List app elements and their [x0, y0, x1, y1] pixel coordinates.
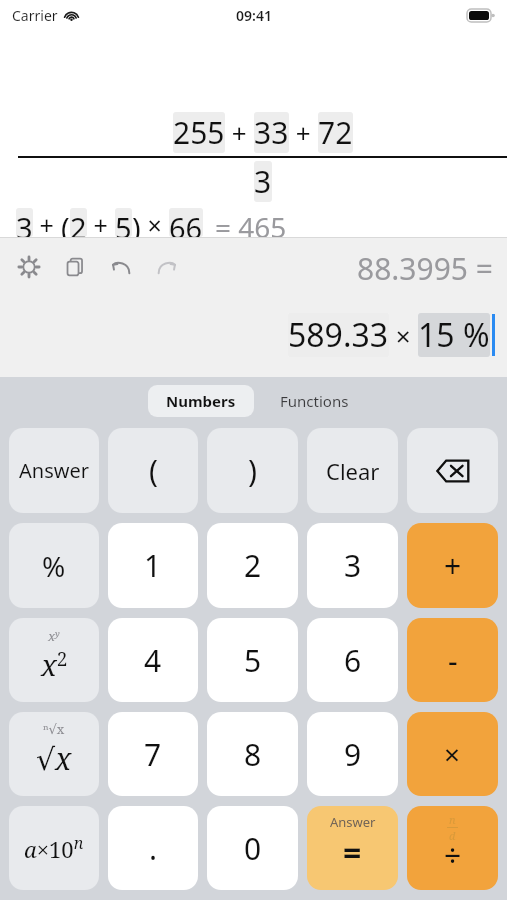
staticText: 3: [254, 161, 272, 202]
staticText: 255: [173, 112, 225, 153]
button[interactable]: Settings: [14, 252, 44, 282]
staticText: %: [42, 547, 66, 585]
staticText: +: [289, 115, 318, 150]
staticText: 88.3995 =: [357, 248, 493, 289]
staticText: 1: [144, 545, 162, 586]
button[interactable]: .: [108, 806, 198, 890]
staticText: ×: [444, 735, 461, 773]
staticText: ): [248, 450, 257, 491]
staticText: =: [343, 831, 362, 875]
button[interactable]: ×: [407, 712, 498, 796]
button[interactable]: Numbers: [148, 385, 254, 417]
staticText: Answer: [19, 457, 89, 484]
button[interactable]: 8: [207, 712, 298, 796]
staticText: ⁿ√x: [43, 720, 65, 738]
staticText: a×10n: [24, 832, 84, 864]
button[interactable]: Clear: [307, 428, 398, 513]
staticText: ÷: [444, 835, 462, 876]
staticText: 5: [244, 640, 262, 681]
button[interactable]: 2: [207, 523, 298, 608]
staticText: 72: [318, 112, 353, 153]
staticText: (: [61, 208, 70, 237]
button[interactable]: 9: [307, 712, 398, 796]
button[interactable]: 6: [307, 618, 398, 702]
button[interactable]: Backspace: [407, 428, 498, 513]
button[interactable]: 3: [307, 523, 398, 608]
staticText: +: [33, 208, 61, 237]
staticText: 2: [70, 208, 87, 237]
button[interactable]: -: [407, 618, 498, 702]
staticText: x2: [41, 645, 68, 684]
button[interactable]: Answer: [9, 428, 99, 513]
button[interactable]: 4: [108, 618, 198, 702]
button[interactable]: 0: [207, 806, 298, 890]
staticText: +: [444, 545, 462, 586]
staticText: 9: [344, 734, 362, 775]
staticText: 8: [244, 734, 262, 775]
staticText: 66: [169, 208, 203, 237]
button[interactable]: Undo: [106, 252, 136, 282]
button[interactable]: Functions: [270, 385, 359, 417]
staticText: xy: [48, 627, 60, 645]
staticText: √x: [36, 738, 72, 779]
staticText: Clear: [326, 456, 380, 486]
staticText: 4: [144, 640, 162, 681]
button[interactable]: square root: [9, 712, 99, 796]
staticText: +: [225, 115, 254, 150]
staticText: ×: [389, 318, 418, 353]
staticText: Answer: [330, 813, 376, 831]
staticText: n: [449, 812, 456, 827]
staticText: 2: [244, 545, 262, 586]
staticText: d: [449, 828, 456, 843]
staticText: ): [132, 208, 141, 237]
staticText: Carrier: [12, 6, 58, 25]
staticText: 3: [344, 545, 362, 586]
button[interactable]: +: [407, 523, 498, 608]
staticText: Numbers: [166, 391, 236, 411]
button[interactable]: (: [108, 428, 198, 513]
button[interactable]: Redo: [152, 252, 182, 282]
button[interactable]: scientific notation: [9, 806, 99, 890]
staticText: +: [87, 208, 115, 237]
staticText: ×: [141, 208, 169, 237]
staticText: 5: [115, 208, 132, 237]
staticText: 6: [344, 640, 362, 681]
button[interactable]: Copy: [60, 252, 90, 282]
staticText: 09:41: [236, 6, 272, 25]
staticText: -: [448, 640, 458, 681]
staticText: 15 %: [418, 313, 490, 357]
button[interactable]: 7: [108, 712, 198, 796]
button[interactable]: 1: [108, 523, 198, 608]
staticText: .: [149, 828, 158, 869]
button[interactable]: x^y: [9, 618, 99, 702]
button[interactable]: %: [9, 523, 99, 608]
staticText: (: [149, 450, 158, 491]
staticText: 3: [16, 208, 33, 237]
staticText: 0: [244, 828, 262, 869]
button[interactable]: equals: [307, 806, 398, 890]
button[interactable]: ): [207, 428, 298, 513]
staticText: Functions: [280, 391, 349, 411]
staticText: 7: [144, 734, 162, 775]
staticText: 33: [254, 112, 289, 153]
staticText: = 465: [215, 208, 287, 237]
staticText: 589.33: [288, 313, 389, 357]
button[interactable]: divide: [407, 806, 498, 890]
button[interactable]: 5: [207, 618, 298, 702]
